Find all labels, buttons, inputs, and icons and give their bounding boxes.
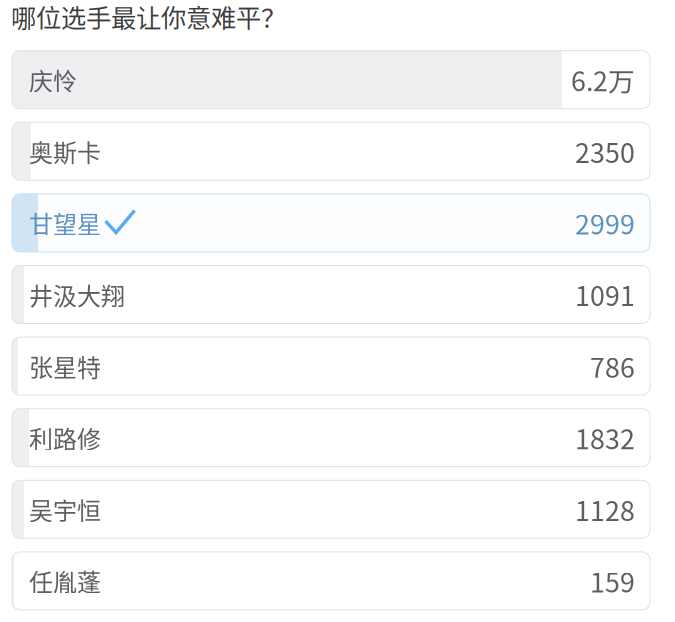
staticText: 张星特: [29, 349, 101, 383]
staticText: 庆怜: [29, 62, 77, 97]
button[interactable]: 1091: [12, 265, 650, 323]
staticText: 吴宇恒: [29, 492, 101, 527]
button[interactable]: 2350: [12, 122, 650, 180]
button[interactable]: 1128: [12, 480, 650, 538]
staticText: 任胤蓬: [29, 563, 101, 598]
button[interactable]: 159: [12, 552, 650, 610]
staticText: 786: [590, 347, 635, 385]
staticText: 哪位选手最让你意难平？: [11, 0, 286, 35]
staticText: 井汲大翔: [29, 277, 125, 312]
button[interactable]: 2999: [12, 194, 650, 252]
staticText: 1091: [575, 275, 635, 314]
button[interactable]: 6.2万: [12, 51, 650, 109]
staticText: 2350: [575, 132, 635, 171]
button[interactable]: 786: [12, 337, 650, 395]
staticText: 奥斯卡: [29, 134, 101, 169]
button[interactable]: 1832: [12, 409, 650, 467]
staticText: 159: [590, 562, 635, 600]
staticText: 1832: [575, 418, 635, 457]
staticText: 甘望星: [29, 205, 101, 240]
staticText: 1128: [575, 490, 635, 529]
staticText: 利路修: [29, 420, 101, 455]
staticText: 6.2万: [571, 60, 635, 99]
staticText: 2999: [575, 204, 635, 242]
